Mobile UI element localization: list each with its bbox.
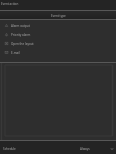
staticText: Event action	[1, 2, 19, 6]
button[interactable]: Alarm output	[0, 21, 116, 30]
other: Open dropdown	[110, 147, 114, 151]
staticText: E-mail	[11, 51, 20, 55]
button[interactable]: E-mail	[0, 48, 116, 57]
button[interactable]: Always	[80, 146, 116, 150]
staticText: Priority alarm	[11, 33, 31, 37]
staticText: Always	[80, 147, 90, 151]
button[interactable]: Priority alarm	[0, 30, 116, 39]
staticText: Alarm output	[11, 24, 30, 28]
staticText: Open the layout	[11, 42, 34, 46]
staticText: Event type	[51, 14, 66, 18]
button[interactable]: Open the layout	[0, 39, 116, 48]
staticText: Schedule	[3, 147, 16, 151]
